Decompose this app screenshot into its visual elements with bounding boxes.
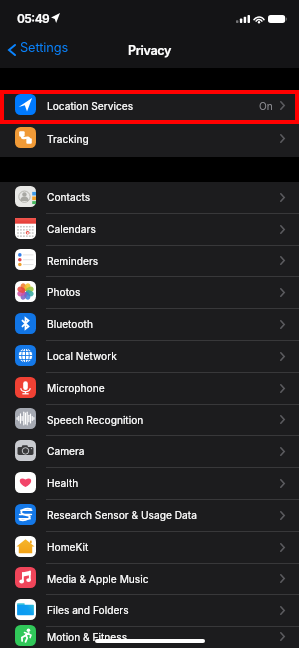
button[interactable]: Files and Folders [0, 595, 299, 627]
button[interactable]: HomeKit [0, 532, 299, 564]
button[interactable]: Calendars [0, 214, 299, 246]
button[interactable]: Tracking [0, 123, 299, 156]
staticText: On [259, 100, 273, 112]
staticText: Photos [47, 286, 81, 298]
staticText: Reminders [47, 255, 99, 267]
staticText: Local Network [47, 350, 117, 362]
staticText: Tracking [47, 133, 89, 145]
button[interactable]: Photos [0, 277, 299, 309]
button[interactable]: Media & Apple Music [0, 564, 299, 595]
button[interactable]: Settings [0, 40, 77, 55]
staticText: Motion & Fitness [47, 631, 128, 643]
staticText: 05:49 [17, 11, 50, 26]
button[interactable]: Contacts [0, 182, 299, 214]
staticText: Research Sensor & Usage Data [47, 509, 197, 521]
staticText: HomeKit [47, 541, 89, 553]
button[interactable]: Camera [0, 436, 299, 468]
button[interactable]: Location Services [0, 90, 299, 123]
staticText: Bluetooth [47, 318, 93, 330]
staticText: Media & Apple Music [47, 573, 149, 585]
button[interactable]: Bluetooth [0, 309, 299, 341]
staticText: Settings [20, 40, 69, 55]
button[interactable]: Local Network [0, 341, 299, 373]
staticText: Camera [47, 445, 85, 457]
staticText: Speech Recognition [47, 414, 144, 426]
staticText: Files and Folders [47, 604, 129, 616]
button[interactable]: Microphone [0, 373, 299, 405]
staticText: Location Services [47, 100, 134, 112]
button[interactable]: Speech Recognition [0, 405, 299, 436]
button[interactable]: Health [0, 468, 299, 500]
staticText: Privacy [128, 43, 172, 58]
button[interactable]: Motion & Fitness [0, 627, 299, 648]
staticText: Calendars [47, 223, 96, 235]
staticText: Contacts [47, 191, 91, 203]
staticText: Health [47, 477, 79, 489]
button[interactable]: Research Sensor & Usage Data [0, 500, 299, 532]
button[interactable]: Reminders [0, 246, 299, 277]
staticText: Microphone [47, 382, 105, 394]
